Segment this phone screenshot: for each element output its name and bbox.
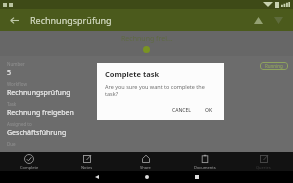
staticText: Share [140, 165, 151, 170]
button[interactable]: Previous [249, 11, 267, 29]
staticText: Geschäftsführung [7, 128, 67, 138]
staticText: Complete [20, 165, 39, 170]
staticText: Due [7, 141, 16, 147]
staticText: Running [265, 63, 283, 69]
staticText: Complete task [105, 69, 160, 79]
staticText: Are you sure you want to complete the ta… [105, 83, 218, 97]
button[interactable]: CANCEL [167, 105, 196, 116]
button[interactable]: Next [269, 11, 287, 29]
staticText: Notes [81, 165, 93, 170]
button[interactable]: Running [265, 63, 283, 69]
staticText: Queries [256, 165, 271, 170]
staticText: Number [7, 61, 25, 67]
button[interactable]: OK [200, 105, 218, 116]
staticText: Rechnung frei... [121, 34, 173, 44]
staticText: Documents [194, 165, 216, 170]
button[interactable]: Documents [175, 152, 234, 171]
button[interactable]: Back [6, 12, 22, 28]
button[interactable]: Back [87, 171, 107, 183]
staticText: Rechnungsprüfung [7, 88, 71, 98]
button[interactable]: Queries [234, 152, 293, 171]
staticText: CANCEL [172, 107, 191, 114]
staticText: Rechnungsprüfung [30, 14, 112, 26]
staticText: 5 [7, 68, 12, 78]
button[interactable]: Workflow step [143, 46, 150, 53]
button[interactable]: Complete [0, 152, 58, 171]
staticText: Rechnung freigeben [7, 108, 74, 118]
staticText: Task [7, 101, 17, 107]
button[interactable]: Recents [187, 171, 207, 183]
staticText: Workflow [7, 81, 27, 87]
button[interactable]: Share [116, 152, 175, 171]
button[interactable]: Home [137, 171, 157, 183]
button[interactable]: Notes [58, 152, 116, 171]
staticText: OK [205, 107, 213, 114]
staticText: Assigned to [7, 121, 32, 127]
